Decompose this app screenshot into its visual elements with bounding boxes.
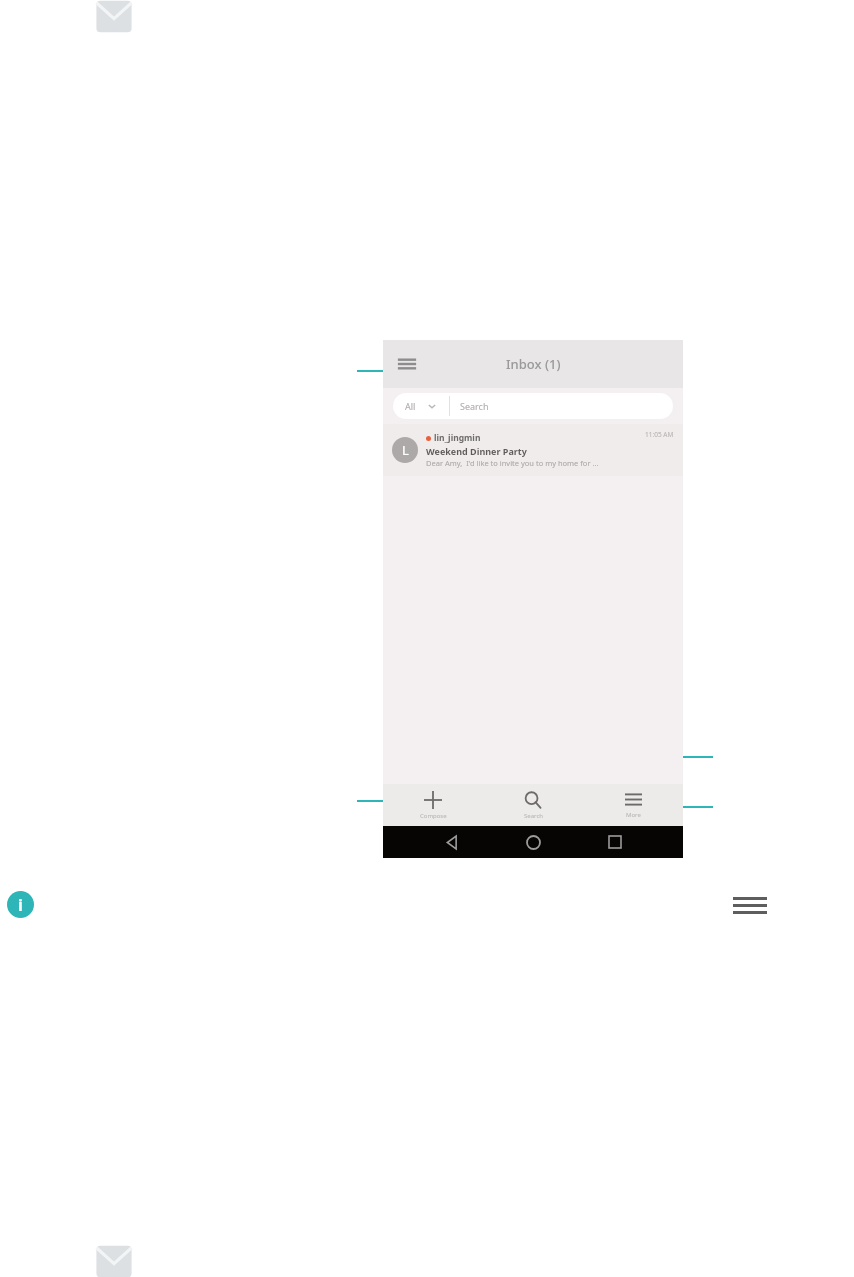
button[interactable]: Recents — [602, 829, 628, 855]
button[interactable]: More — [583, 784, 683, 826]
staticText: Dear Amy, I'd like to invite you to my h… — [426, 458, 599, 468]
staticText: Search — [524, 812, 543, 820]
button[interactable]: Compose — [383, 784, 483, 826]
staticText: i — [18, 894, 23, 916]
staticText: All — [405, 400, 416, 412]
staticText: Compose — [420, 812, 447, 820]
staticText: More — [626, 811, 641, 819]
button[interactable]: Home — [520, 829, 546, 855]
staticText: Weekend Dinner Party — [426, 445, 527, 457]
staticText: 11:05 AM — [645, 430, 674, 439]
staticText: lin_jingmin — [434, 432, 481, 444]
staticText: L — [402, 441, 409, 459]
staticText: Search — [460, 400, 489, 412]
button[interactable]: All — [393, 393, 673, 419]
button[interactable]: L — [383, 424, 683, 476]
button[interactable]: Search — [483, 784, 583, 826]
button[interactable]: Back — [439, 829, 465, 855]
button[interactable]: Navigation drawer — [395, 352, 419, 376]
button[interactable]: Menu — [733, 893, 767, 918]
staticText: Inbox (1) — [506, 355, 561, 373]
button[interactable]: Information — [7, 891, 34, 918]
